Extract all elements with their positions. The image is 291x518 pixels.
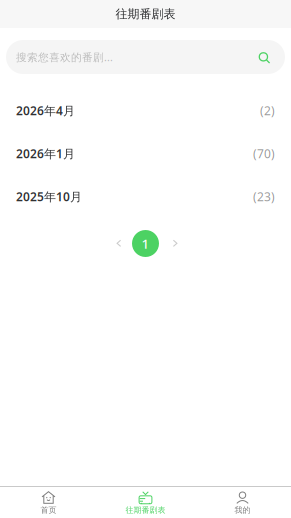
button[interactable]: 首页 bbox=[0, 487, 97, 518]
staticText: 往期番剧表 bbox=[125, 505, 165, 515]
staticText: 我的 bbox=[234, 505, 250, 515]
button[interactable]: Next page bbox=[163, 233, 184, 253]
staticText: 搜索您喜欢的番剧... bbox=[16, 50, 113, 64]
button[interactable]: 2025年10月 bbox=[0, 175, 291, 218]
staticText: 首页 bbox=[40, 505, 56, 515]
staticText: (70) bbox=[253, 145, 275, 161]
button[interactable]: 2026年1月 bbox=[0, 132, 291, 175]
staticText: (23) bbox=[253, 188, 275, 204]
button[interactable]: Previous page bbox=[107, 233, 128, 253]
staticText: 往期番剧表 bbox=[115, 7, 175, 21]
staticText: 2025年10月 bbox=[16, 188, 82, 204]
button[interactable]: 往期番剧表 bbox=[97, 487, 194, 518]
button[interactable]: 1 bbox=[132, 230, 159, 257]
staticText: 1 bbox=[141, 235, 149, 252]
button[interactable]: 搜索您喜欢的番剧... bbox=[6, 40, 285, 74]
button[interactable]: 我的 bbox=[194, 487, 291, 518]
staticText: (2) bbox=[260, 102, 275, 118]
button[interactable]: 2026年4月 bbox=[0, 89, 291, 132]
staticText: 2026年1月 bbox=[16, 145, 75, 161]
staticText: 2026年4月 bbox=[16, 102, 75, 118]
